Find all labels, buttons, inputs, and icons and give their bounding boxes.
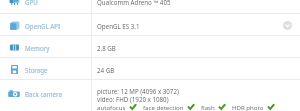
staticText: Back camera — [25, 90, 62, 98]
staticText: picture: 12 MP (4096 x 3072) — [97, 87, 179, 95]
button[interactable]: Memory — [0, 36, 300, 58]
button[interactable]: Back camera — [0, 80, 300, 111]
staticText: 24 GB — [97, 66, 115, 74]
button[interactable]: OpenGL API — [0, 14, 300, 36]
button[interactable]: GPU — [0, 0, 300, 14]
staticText: Memory — [25, 44, 50, 52]
staticText: Qualcomm Adreno ™ 405 — [97, 0, 171, 6]
staticText: 2.8 GB — [97, 44, 116, 52]
staticText: flash — [201, 103, 215, 111]
staticText: Storage — [25, 66, 48, 74]
staticText: GPU — [25, 0, 38, 6]
staticText: HDR photo — [232, 103, 264, 111]
staticText: OpenGL API — [25, 22, 61, 30]
staticText: OpenGL ES 3.1 — [97, 22, 140, 30]
button[interactable]: Expand details — [280, 18, 294, 32]
staticText: face detection — [143, 103, 184, 111]
staticText: autofocus — [97, 103, 126, 111]
staticText: video: FHD (1920 x 1080) — [97, 95, 169, 103]
button[interactable]: Storage — [0, 58, 300, 80]
